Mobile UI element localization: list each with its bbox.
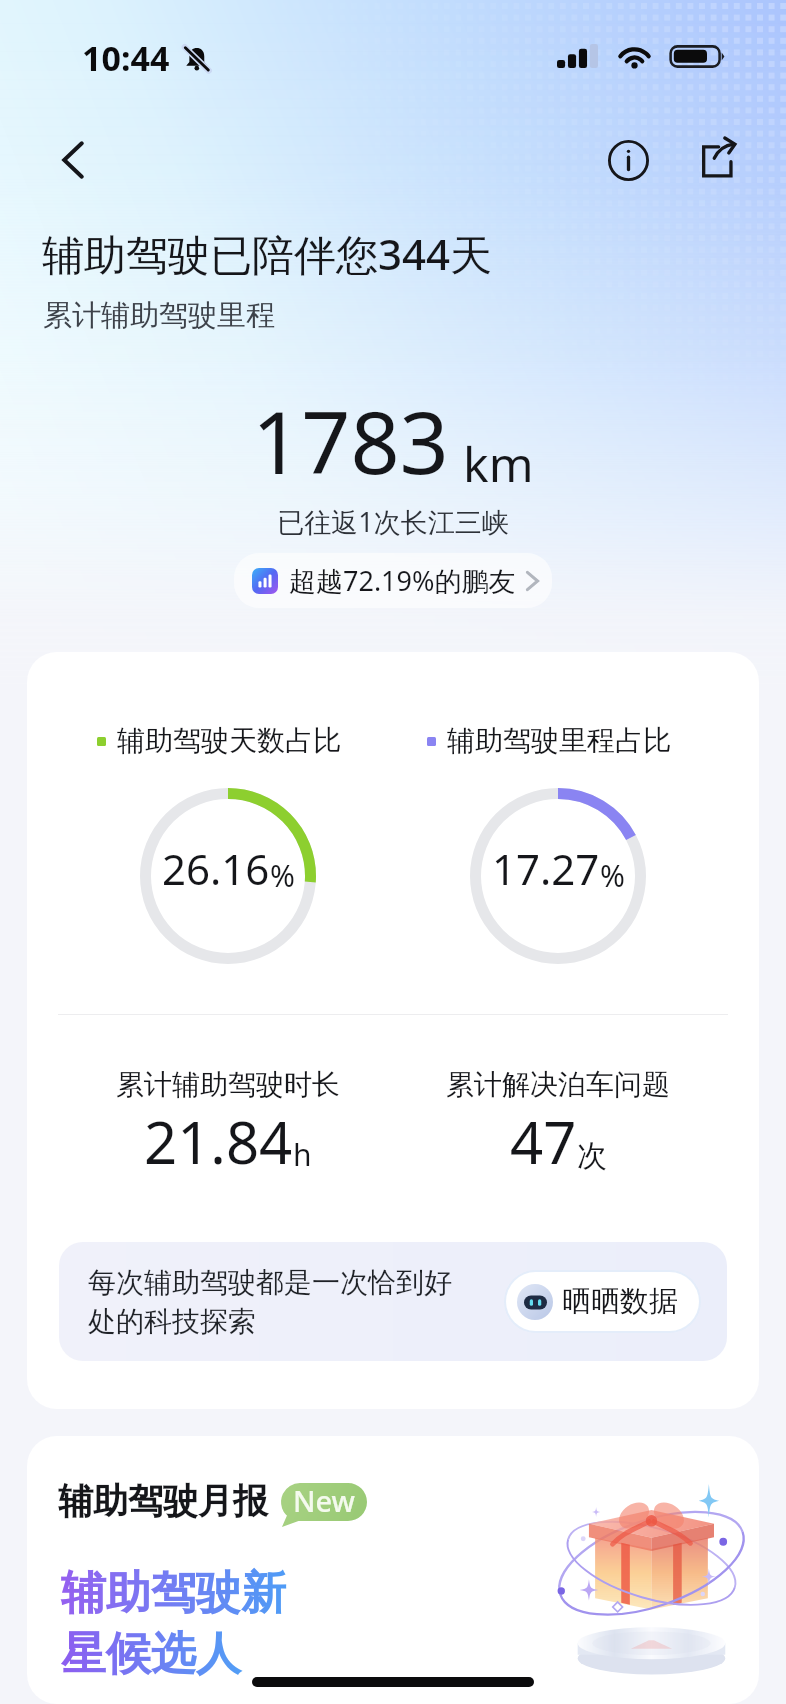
button[interactable]: Share [683, 127, 749, 193]
staticText: 次 [577, 1137, 607, 1175]
button[interactable]: Info [595, 127, 661, 193]
staticText: 晒晒数据 [562, 1283, 678, 1320]
staticText: 累计解决泊车问题 [446, 1067, 670, 1102]
staticText: 1783 [252, 382, 449, 499]
staticText: 26.16 [162, 840, 270, 897]
staticText: 累计辅助驾驶里程 [43, 297, 275, 334]
staticText: 已往返1次长江三峡 [0, 503, 786, 540]
staticText: 超越72.19%的鹏友 [289, 562, 516, 599]
staticText: 21.84 [144, 1102, 293, 1181]
button[interactable]: 辅助驾驶月报 [27, 1436, 759, 1704]
button[interactable]: 超越72.19%的鹏友 [234, 553, 552, 608]
button[interactable]: Back [40, 127, 106, 193]
staticText: 辅助驾驶已陪伴您344天 [42, 225, 493, 282]
staticText: 累计辅助驾驶时长 [116, 1067, 340, 1102]
staticText: 辅助驾驶新 [61, 1565, 286, 1622]
staticText: % [600, 855, 625, 896]
staticText: % [270, 855, 295, 896]
staticText: 10:44 [82, 35, 170, 81]
staticText: 17.27 [492, 840, 600, 897]
staticText: 辅助驾驶天数占比 [117, 723, 341, 758]
staticText: 每次辅助驾驶都是一次恰到好处的科技探索 [88, 1265, 458, 1339]
staticText: 47 [510, 1102, 577, 1181]
staticText: km [463, 431, 534, 496]
staticText: h [293, 1134, 312, 1175]
staticText: New [293, 1481, 355, 1520]
button[interactable]: 晒晒数据 [506, 1272, 699, 1331]
staticText: 星候选人 [61, 1626, 241, 1683]
staticText: 辅助驾驶月报 [58, 1479, 268, 1523]
staticText: 辅助驾驶里程占比 [447, 723, 671, 758]
